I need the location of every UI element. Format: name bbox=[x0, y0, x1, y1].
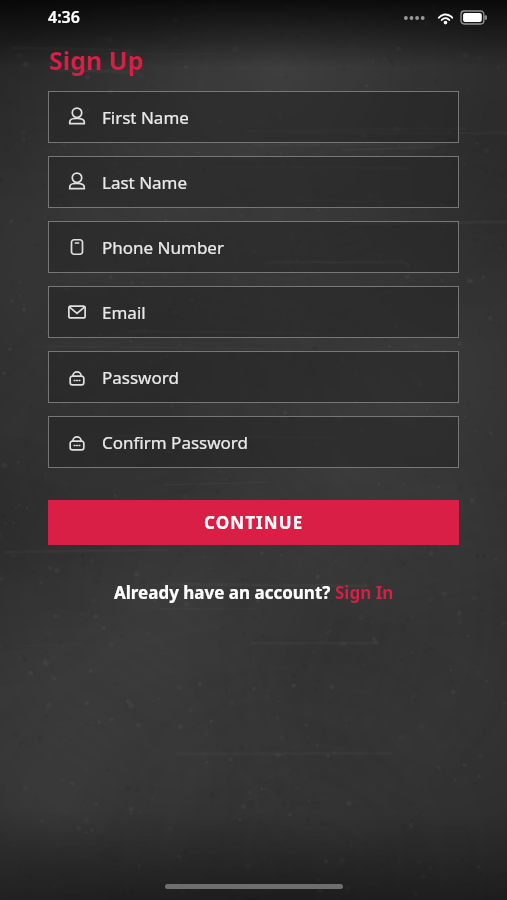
staticText: Confirm Password bbox=[102, 431, 248, 454]
button[interactable]: Confirm Password bbox=[48, 416, 459, 468]
staticText: First Name bbox=[102, 106, 189, 129]
staticText: CONTINUE bbox=[204, 511, 304, 534]
button[interactable]: Sign In bbox=[335, 581, 394, 604]
staticText: Phone Number bbox=[102, 236, 224, 259]
staticText: 4:36 bbox=[48, 6, 80, 28]
button[interactable]: Last Name bbox=[48, 156, 459, 208]
staticText: Email bbox=[102, 301, 146, 324]
staticText: Already have an account? bbox=[114, 581, 335, 604]
staticText: Last Name bbox=[102, 171, 188, 194]
staticText: Sign Up bbox=[49, 43, 144, 77]
button[interactable]: First Name bbox=[48, 91, 459, 143]
button[interactable]: Email bbox=[48, 286, 459, 338]
staticText: Password bbox=[102, 366, 179, 389]
staticText: Sign In bbox=[335, 581, 394, 604]
button[interactable]: Phone Number bbox=[48, 221, 459, 273]
button[interactable]: Password bbox=[48, 351, 459, 403]
button[interactable]: CONTINUE bbox=[48, 500, 459, 545]
